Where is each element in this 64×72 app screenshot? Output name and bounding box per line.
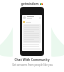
- button[interactable]: getwisdom: [0, 0, 64, 7]
- staticText: Chat With Community: [14, 58, 50, 62]
- staticText: Get answers from people like you: [12, 63, 53, 67]
- staticText: getwisdom: [21, 2, 39, 6]
